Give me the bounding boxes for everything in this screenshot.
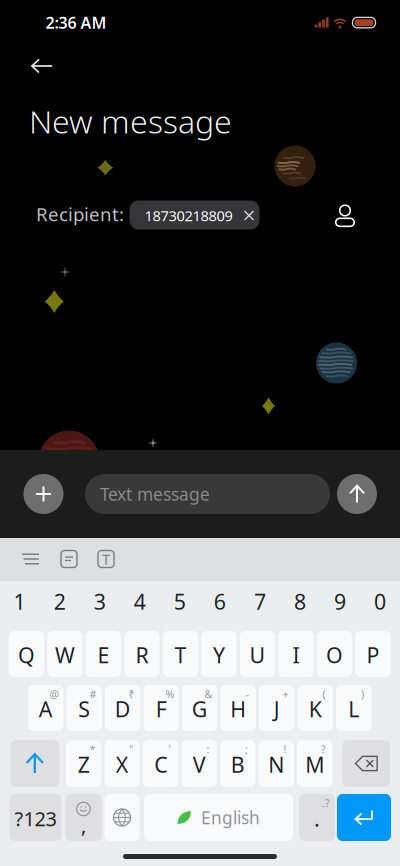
button[interactable]: )	[336, 685, 371, 731]
button[interactable]: Change keyboard	[104, 794, 139, 841]
button[interactable]: Add attachment	[23, 474, 63, 514]
staticText: #	[89, 687, 96, 701]
button[interactable]: ?	[297, 740, 332, 787]
button[interactable]: Q	[9, 631, 44, 677]
staticText: !	[283, 742, 286, 756]
staticText: :	[206, 742, 209, 756]
staticText: K	[309, 695, 322, 723]
staticText: '	[168, 742, 170, 756]
button[interactable]: 0	[361, 587, 399, 615]
button[interactable]: %	[143, 685, 179, 731]
button[interactable]: 18730218809	[129, 200, 259, 229]
staticText: B	[231, 750, 245, 779]
staticText: A	[39, 695, 53, 723]
button[interactable]: 7	[241, 587, 279, 615]
button[interactable]: I	[278, 631, 314, 677]
staticText: *	[89, 742, 95, 756]
button[interactable]: O	[317, 631, 352, 677]
staticText: T	[102, 549, 110, 569]
button[interactable]: Text	[90, 543, 122, 575]
staticText: F	[156, 695, 167, 723]
button[interactable]: Emoji	[65, 794, 102, 841]
button[interactable]: T	[163, 631, 198, 677]
button[interactable]: !	[258, 740, 294, 787]
button[interactable]: ₹	[105, 685, 140, 731]
staticText: H	[230, 695, 246, 723]
staticText: "	[129, 742, 133, 756]
staticText: .	[314, 804, 320, 833]
staticText: ;	[245, 742, 248, 756]
button[interactable]: E	[86, 631, 121, 677]
button[interactable]: #	[66, 685, 102, 731]
button[interactable]: Text message	[85, 474, 330, 514]
button[interactable]: Clipboard	[53, 543, 85, 575]
button[interactable]: Choose contact	[325, 196, 365, 236]
button[interactable]: 6	[201, 587, 239, 615]
staticText: Recipient:	[36, 202, 124, 226]
staticText: P	[366, 641, 379, 669]
button[interactable]: P	[355, 631, 391, 677]
button[interactable]: +	[259, 685, 294, 731]
staticText: N	[268, 750, 284, 779]
button[interactable]: 8	[281, 587, 319, 615]
staticText: R	[135, 641, 148, 669]
button[interactable]: U	[240, 631, 275, 677]
staticText: M	[305, 750, 324, 779]
staticText: L	[348, 695, 359, 723]
staticText: Z	[78, 750, 90, 779]
staticText: ?	[321, 742, 326, 756]
button[interactable]: (	[297, 685, 333, 731]
staticText: X	[116, 750, 129, 779]
button[interactable]: &	[182, 685, 217, 731]
staticText: 2	[54, 587, 66, 616]
button[interactable]: Space	[144, 794, 293, 841]
staticText: %	[165, 687, 174, 701]
staticText: +	[282, 687, 288, 701]
button[interactable]: .?	[299, 794, 335, 841]
staticText: 9	[334, 587, 346, 616]
staticText: G	[192, 695, 208, 723]
button[interactable]: ?123	[9, 794, 61, 841]
staticText: 5	[174, 587, 186, 616]
button[interactable]: R	[124, 631, 160, 677]
staticText: ?123	[14, 805, 56, 832]
button[interactable]: Text formatting	[14, 542, 48, 576]
staticText: 1	[14, 587, 26, 616]
button[interactable]: -	[220, 685, 256, 731]
button[interactable]: '	[143, 740, 178, 787]
staticText: )	[361, 687, 364, 701]
staticText: Y	[213, 641, 225, 669]
button[interactable]: Return	[337, 794, 391, 841]
button[interactable]: 4	[121, 587, 159, 615]
staticText: 8	[294, 587, 306, 616]
button[interactable]: 2	[41, 587, 79, 615]
button[interactable]: Back	[20, 44, 64, 88]
button[interactable]: W	[47, 631, 83, 677]
staticText: New message	[29, 100, 232, 142]
button[interactable]: Send	[337, 474, 377, 514]
button[interactable]: Shift	[10, 740, 59, 787]
staticText: .?	[322, 796, 330, 810]
staticText: &	[204, 687, 212, 701]
staticText: -	[245, 687, 248, 701]
button[interactable]: 5	[161, 587, 199, 615]
button[interactable]: 1	[1, 587, 39, 615]
staticText: English	[201, 806, 260, 829]
button[interactable]: 9	[321, 587, 359, 615]
staticText: 2:36 AM	[45, 12, 106, 33]
staticText: 4	[134, 587, 146, 616]
staticText: @	[49, 687, 59, 701]
staticText: D	[115, 695, 131, 723]
button[interactable]: Backspace	[342, 740, 390, 787]
button[interactable]: "	[104, 740, 140, 787]
staticText: O	[326, 641, 343, 669]
button[interactable]: *	[66, 740, 101, 787]
button[interactable]: Y	[201, 631, 237, 677]
button[interactable]: ;	[220, 740, 255, 787]
staticText: J	[274, 695, 280, 723]
staticText: C	[154, 750, 167, 779]
button[interactable]: @	[28, 685, 63, 731]
staticText: 7	[254, 587, 266, 616]
button[interactable]: :	[181, 740, 217, 787]
button[interactable]: 3	[81, 587, 119, 615]
